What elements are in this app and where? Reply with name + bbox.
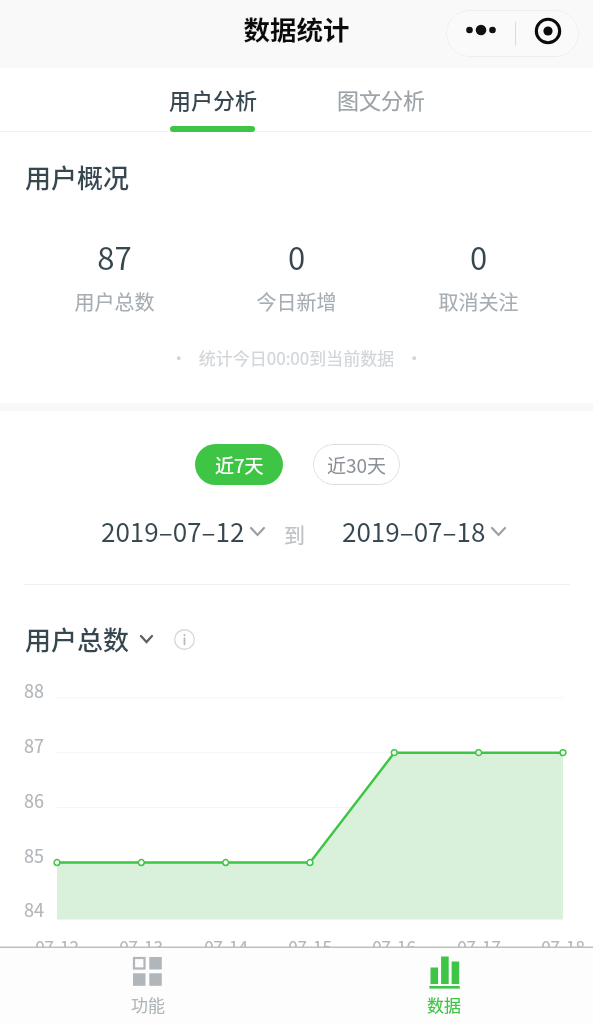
staticText: 功能: [0, 992, 296, 1017]
staticText: 84: [24, 896, 44, 922]
button[interactable]: 数据: [296, 947, 593, 1024]
staticText: 88: [24, 677, 44, 703]
button[interactable]: 近30天: [313, 444, 400, 485]
staticText: 近30天: [327, 451, 387, 479]
button[interactable]: 用户总数: [25, 620, 153, 658]
staticText: 2019–07–18: [342, 512, 486, 550]
staticText: 2019–07–12: [101, 512, 245, 550]
staticText: 07-14: [196, 934, 256, 959]
staticText: 86: [24, 787, 44, 813]
staticText: 今日新增: [205, 287, 388, 316]
staticText: 07-12: [27, 934, 87, 959]
staticText: 用户分析: [129, 83, 297, 115]
staticText: 07-13: [111, 934, 171, 959]
staticText: 数据: [296, 992, 592, 1017]
staticText: 07-15: [280, 934, 340, 959]
button[interactable]: [297, 68, 465, 132]
staticText: 87: [23, 234, 206, 279]
button[interactable]: Close mini program: [516, 10, 579, 57]
button[interactable]: 功能: [0, 947, 296, 1024]
staticText: 近7天: [215, 451, 264, 479]
staticText: 0: [387, 234, 570, 279]
staticText: 用户总数: [25, 620, 130, 658]
staticText: 数据统计: [0, 9, 593, 47]
staticText: 85: [24, 842, 44, 868]
button[interactable]: More options: [446, 10, 515, 57]
button[interactable]: 2019–07–18: [342, 512, 506, 550]
staticText: 07-18: [533, 934, 593, 959]
button[interactable]: Information: [174, 629, 195, 650]
staticText: 07-16: [364, 934, 424, 959]
staticText: 07-17: [449, 934, 509, 959]
staticText: 图文分析: [297, 83, 465, 115]
staticText: 用户概况: [25, 158, 130, 196]
button[interactable]: 2019–07–12: [101, 512, 265, 550]
staticText: 87: [24, 732, 44, 758]
button[interactable]: 近7天: [195, 444, 283, 485]
staticText: 到: [284, 519, 305, 549]
staticText: 0: [205, 234, 388, 279]
staticText: · 统计今日00:00到当前数据 ·: [0, 345, 593, 370]
staticText: 取消关注: [387, 287, 570, 316]
button[interactable]: [129, 68, 297, 132]
staticText: 用户总数: [23, 287, 206, 316]
